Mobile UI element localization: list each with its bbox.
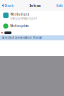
staticText: Daily summary report [10,17,37,20]
button[interactable]: Back [0,1,14,10]
staticText: Weekly digest [10,13,29,16]
staticText: Inbox [29,3,40,8]
staticText: Selected conversation thread [2,36,42,39]
button[interactable]: Weekly digest [0,11,64,22]
staticText: Edit [56,3,62,8]
staticText: Back [5,3,14,8]
button[interactable]: Edit [56,1,64,10]
staticText: Media update [10,24,29,28]
button[interactable]: Media update [0,22,64,30]
